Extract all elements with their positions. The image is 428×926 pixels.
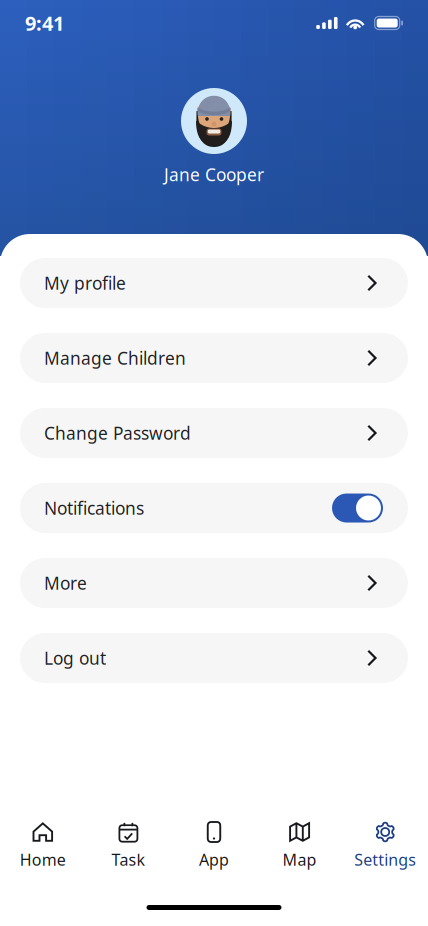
staticText: Manage Children (44, 346, 186, 369)
button[interactable]: Change Password (20, 408, 408, 458)
button[interactable]: More (20, 558, 408, 608)
staticText: App (199, 849, 229, 870)
button[interactable]: Manage Children (20, 333, 408, 383)
staticText: Log out (44, 646, 106, 669)
staticText: Home (20, 849, 66, 870)
button[interactable]: App (171, 822, 257, 870)
staticText: Notifications (44, 496, 144, 519)
button[interactable]: My profile (20, 258, 408, 308)
staticText: Change Password (44, 421, 191, 444)
button[interactable]: Home (0, 822, 86, 870)
staticText: 9:41 (25, 10, 64, 36)
button[interactable]: Map (257, 822, 342, 870)
staticText: Task (111, 849, 145, 870)
button[interactable]: Settings (342, 822, 428, 870)
staticText: Jane Cooper (164, 163, 264, 186)
staticText: More (44, 571, 87, 594)
staticText: Map (283, 849, 317, 870)
staticText: My profile (44, 271, 126, 294)
button[interactable]: Notifications (20, 483, 408, 533)
staticText: Settings (354, 849, 416, 870)
button[interactable]: Task (86, 822, 171, 870)
button[interactable]: Log out (20, 633, 408, 683)
